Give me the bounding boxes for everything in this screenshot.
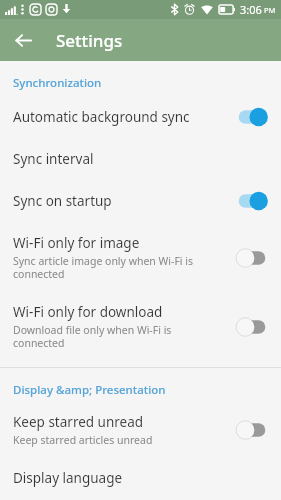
staticText: Wi-Fi only for download (13, 303, 163, 321)
button[interactable]: Sync interval (0, 139, 281, 179)
staticText: 3:06 (240, 2, 262, 17)
button[interactable]: Wi-Fi only for download (234, 316, 270, 338)
button[interactable]: Sync on startup (234, 190, 270, 212)
staticText: Display &amp; Presentation (13, 382, 166, 398)
staticText: Sync on startup (13, 192, 112, 210)
button[interactable]: Keep starred unread (0, 402, 281, 458)
button[interactable]: Back (6, 23, 40, 57)
staticText: Wi-Fi only for image (13, 234, 140, 252)
staticText: Sync article image only when Wi-Fi is co… (13, 254, 194, 281)
button[interactable]: Display language (0, 458, 281, 498)
staticText: Display language (13, 469, 123, 487)
button[interactable]: Wi-Fi only for image (234, 247, 270, 269)
button[interactable]: Wi-Fi only for download (0, 292, 281, 361)
button[interactable]: Sync on startup (0, 179, 281, 223)
staticText: Sync interval (13, 150, 94, 168)
staticText: Synchronization (13, 75, 102, 91)
staticText: Automatic background sync (13, 108, 190, 126)
button[interactable]: Automatic background sync (0, 95, 281, 139)
button[interactable]: Keep starred unread (234, 419, 270, 441)
staticText: Download file only when Wi-Fi is connect… (13, 323, 172, 350)
staticText: Settings (56, 29, 123, 52)
staticText: PM (264, 5, 276, 15)
staticText: Keep starred articles unread (13, 433, 153, 447)
staticText: Keep starred unread (13, 413, 144, 431)
button[interactable]: Automatic background sync (234, 106, 270, 128)
button[interactable]: Wi-Fi only for image (0, 223, 281, 292)
